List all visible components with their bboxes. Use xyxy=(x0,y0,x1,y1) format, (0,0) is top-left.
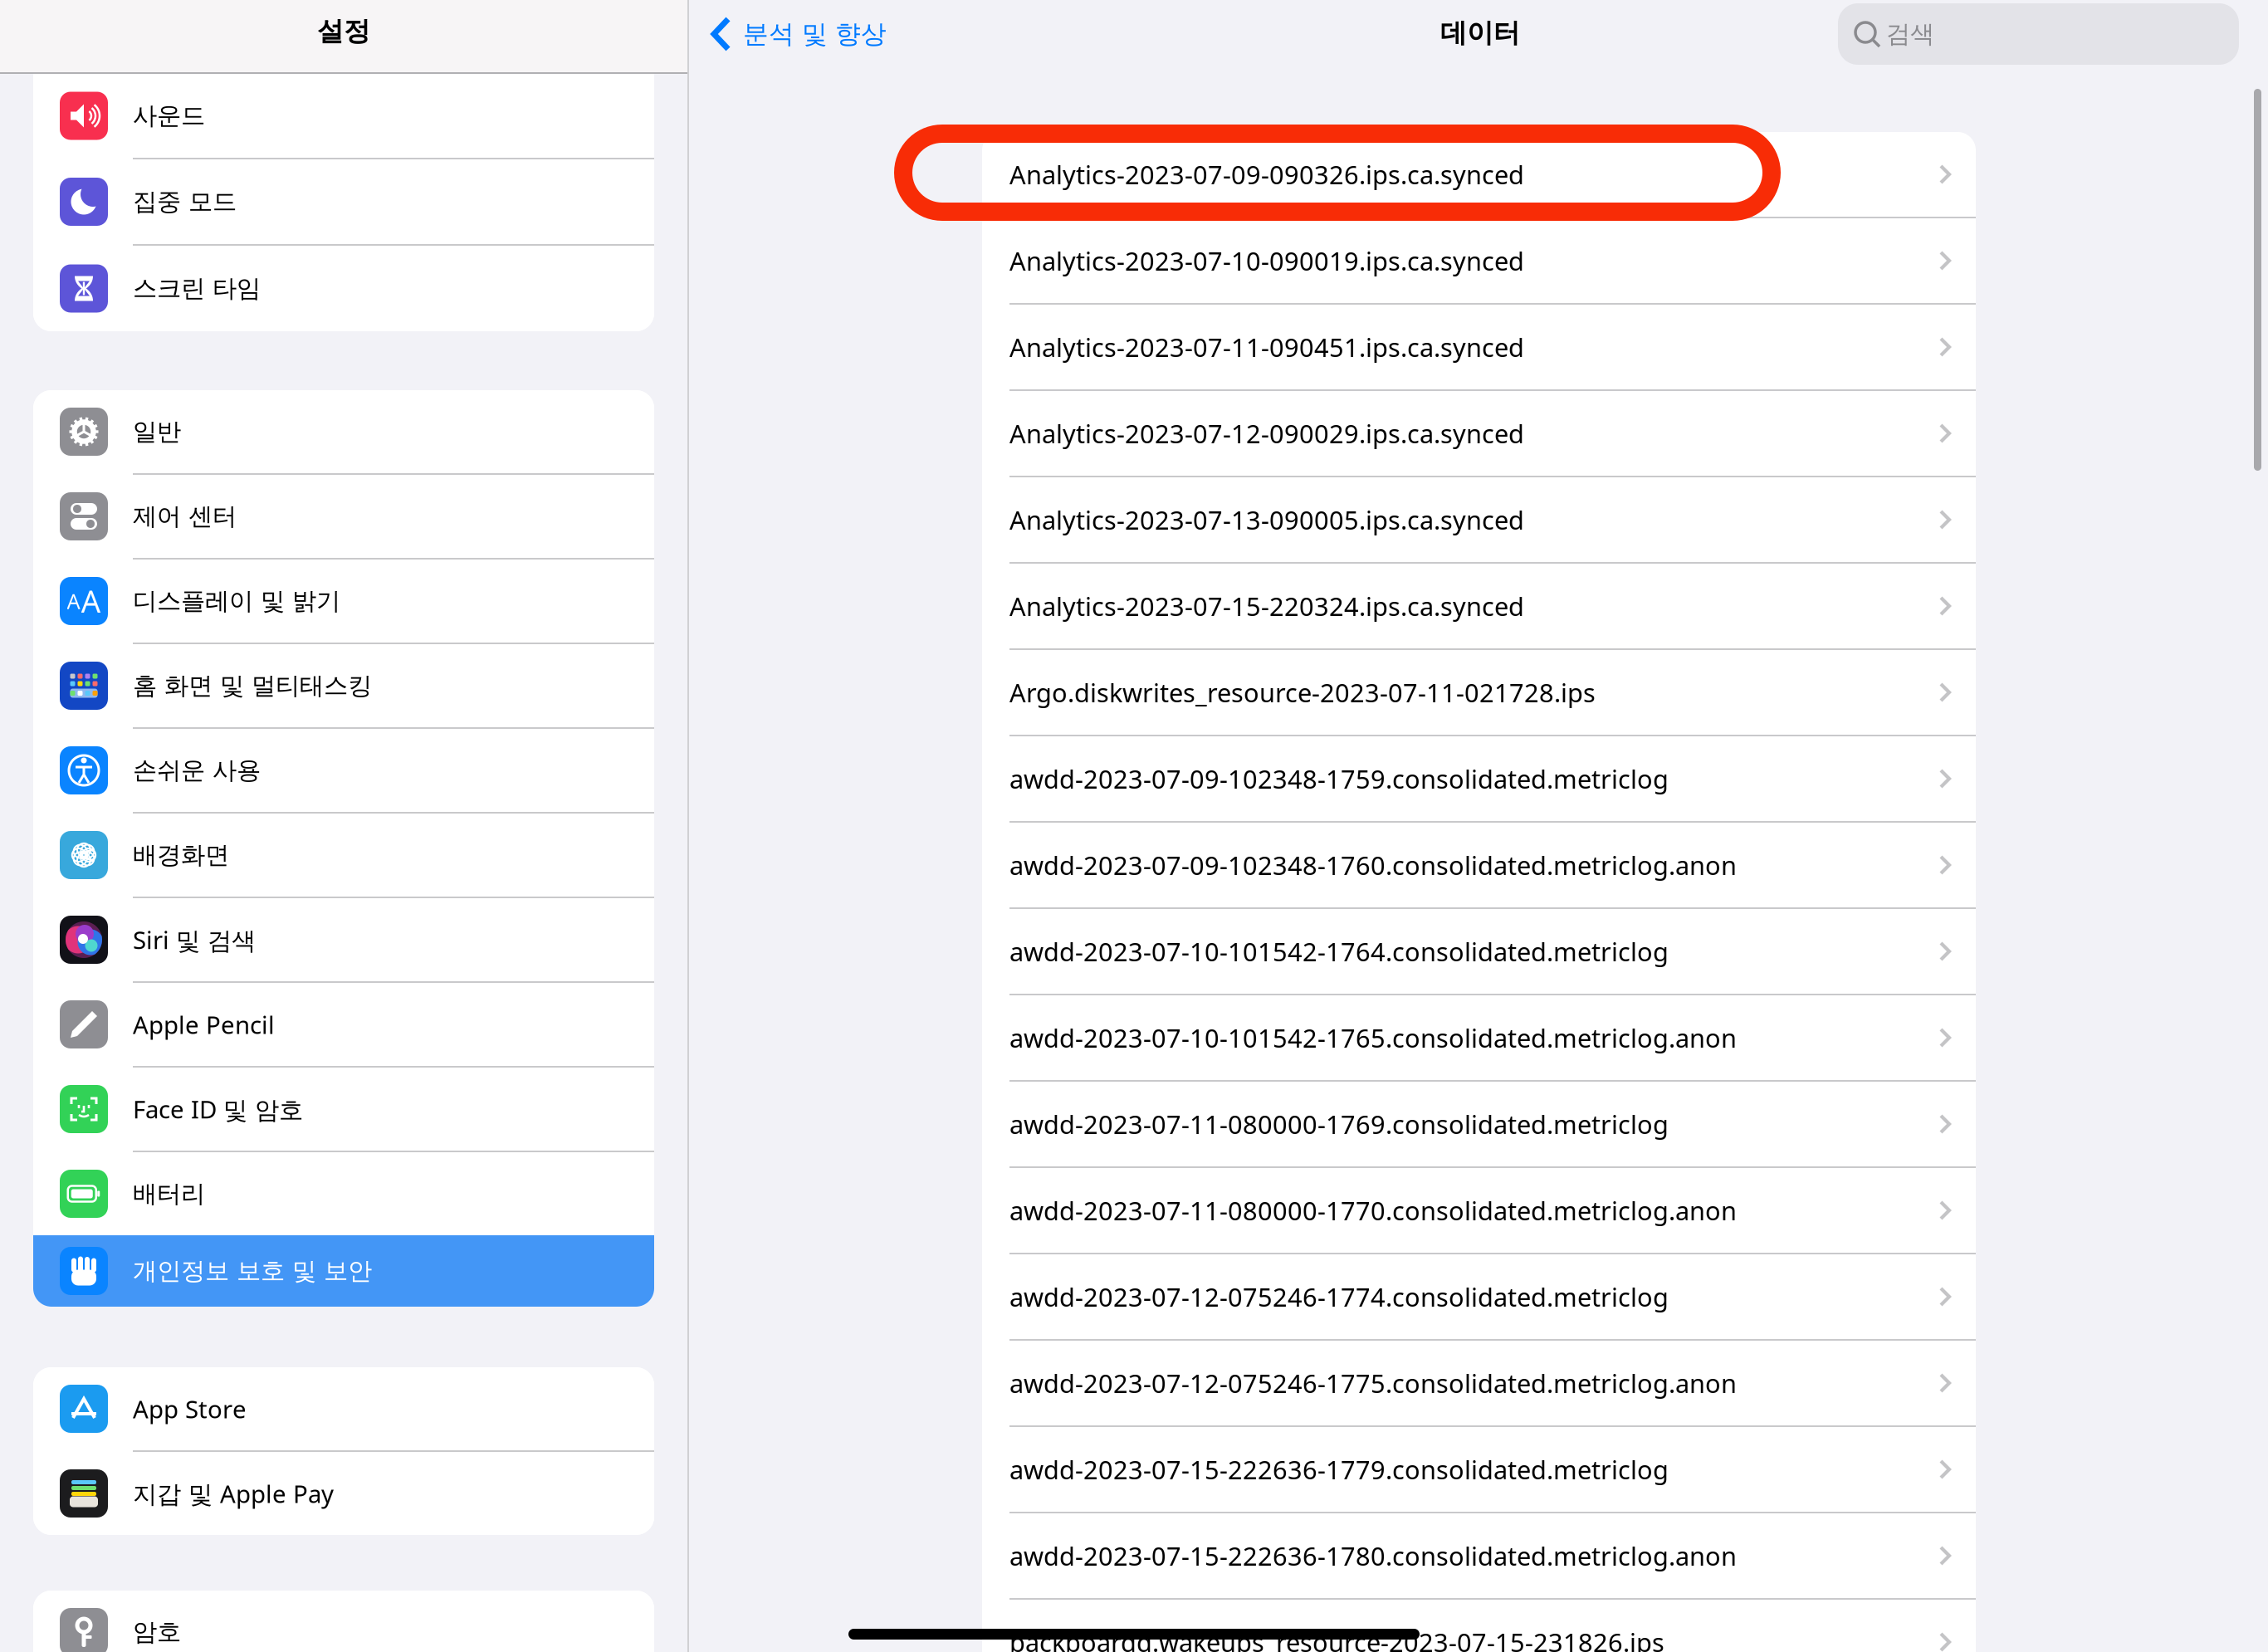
button[interactable]: Siri 및 검색 xyxy=(33,898,654,981)
button[interactable]: awdd-2023-07-10-101542-1764.consolidated… xyxy=(982,909,1976,994)
button[interactable]: App Store xyxy=(33,1367,654,1450)
button[interactable]: 홈 화면 및 멀티태스킹 xyxy=(33,644,654,727)
button[interactable]: 제어 센터 xyxy=(33,475,654,558)
staticText: backboardd.wakeups_resource-2023-07-15-2… xyxy=(1009,1625,1664,1652)
staticText: Argo.diskwrites_resource-2023-07-11-0217… xyxy=(1009,675,1596,709)
staticText: App Store xyxy=(133,1393,247,1425)
staticText: awdd-2023-07-10-101542-1764.consolidated… xyxy=(1009,934,1669,968)
button[interactable]: 지갑 및 Apple Pay xyxy=(33,1452,654,1535)
staticText: 분석 및 향상 xyxy=(743,18,887,50)
button[interactable]: Analytics-2023-07-11-090451.ips.ca.synce… xyxy=(982,305,1976,389)
staticText: 집중 모드 xyxy=(133,187,237,217)
staticText: Analytics-2023-07-09-090326.ips.ca.synce… xyxy=(1009,157,1524,191)
button[interactable]: 암호 xyxy=(33,1591,654,1652)
staticText: Analytics-2023-07-12-090029.ips.ca.synce… xyxy=(1009,416,1524,450)
button[interactable]: Analytics-2023-07-09-090326.ips.ca.synce… xyxy=(982,132,1976,217)
button[interactable]: awdd-2023-07-15-222636-1779.consolidated… xyxy=(982,1427,1976,1512)
staticText: 배터리 xyxy=(133,1179,205,1209)
staticText: A xyxy=(67,587,80,615)
staticText: awdd-2023-07-15-222636-1779.consolidated… xyxy=(1009,1452,1669,1486)
staticText: 사운드 xyxy=(133,101,205,131)
staticText: Analytics-2023-07-15-220324.ips.ca.synce… xyxy=(1009,589,1524,623)
staticText: 검색 xyxy=(1886,19,1934,49)
staticText: 스크린 타임 xyxy=(133,274,261,303)
button[interactable]: awdd-2023-07-11-080000-1770.consolidated… xyxy=(982,1168,1976,1253)
staticText: awdd-2023-07-12-075246-1774.consolidated… xyxy=(1009,1280,1669,1314)
staticText: awdd-2023-07-15-222636-1780.consolidated… xyxy=(1009,1539,1737,1573)
staticText: 개인정보 보호 및 보안 xyxy=(133,1256,372,1286)
button[interactable]: Argo.diskwrites_resource-2023-07-11-0217… xyxy=(982,650,1976,735)
button[interactable]: awdd-2023-07-09-102348-1760.consolidated… xyxy=(982,823,1976,907)
button[interactable]: Analytics-2023-07-13-090005.ips.ca.synce… xyxy=(982,477,1976,562)
button[interactable]: awdd-2023-07-11-080000-1769.consolidated… xyxy=(982,1082,1976,1166)
staticText: awdd-2023-07-09-102348-1760.consolidated… xyxy=(1009,848,1737,882)
button[interactable]: Apple Pencil xyxy=(33,983,654,1066)
button[interactable]: awdd-2023-07-09-102348-1759.consolidated… xyxy=(982,736,1976,821)
button[interactable]: 분석 및 향상 xyxy=(689,15,887,53)
button[interactable]: Face ID 및 암호 xyxy=(33,1068,654,1151)
staticText: 디스플레이 및 밝기 xyxy=(133,586,340,616)
staticText: Analytics-2023-07-13-090005.ips.ca.synce… xyxy=(1009,503,1524,537)
button[interactable]: 손쉬운 사용 xyxy=(33,729,654,812)
staticText: Face ID 및 암호 xyxy=(133,1093,303,1125)
button[interactable]: 배터리 xyxy=(33,1152,654,1235)
staticText: A xyxy=(81,580,101,622)
button[interactable]: Analytics-2023-07-15-220324.ips.ca.synce… xyxy=(982,564,1976,648)
button[interactable]: 검색 xyxy=(1838,3,2239,65)
button[interactable]: 집중 모드 xyxy=(33,159,654,244)
staticText: 손쉬운 사용 xyxy=(133,755,261,785)
button[interactable]: awdd-2023-07-12-075246-1774.consolidated… xyxy=(982,1254,1976,1339)
staticText: 암호 xyxy=(133,1617,181,1647)
button[interactable]: 개인정보 보호 및 보안 xyxy=(33,1235,654,1307)
staticText: 데이터 xyxy=(1440,17,1520,49)
button[interactable]: awdd-2023-07-12-075246-1775.consolidated… xyxy=(982,1341,1976,1425)
button[interactable]: 스크린 타임 xyxy=(33,246,654,331)
button[interactable]: awdd-2023-07-10-101542-1765.consolidated… xyxy=(982,995,1976,1080)
staticText: awdd-2023-07-09-102348-1759.consolidated… xyxy=(1009,762,1669,796)
button[interactable]: Analytics-2023-07-10-090019.ips.ca.synce… xyxy=(982,218,1976,303)
staticText: 제어 센터 xyxy=(133,501,237,531)
staticText: 홈 화면 및 멀티태스킹 xyxy=(133,671,372,701)
staticText: Siri 및 검색 xyxy=(133,923,256,956)
button[interactable]: awdd-2023-07-15-222636-1780.consolidated… xyxy=(982,1513,1976,1598)
button[interactable]: Analytics-2023-07-12-090029.ips.ca.synce… xyxy=(982,391,1976,476)
staticText: 설정 xyxy=(317,15,370,48)
staticText: awdd-2023-07-11-080000-1769.consolidated… xyxy=(1009,1107,1669,1141)
staticText: Analytics-2023-07-10-090019.ips.ca.synce… xyxy=(1009,244,1524,278)
staticText: awdd-2023-07-12-075246-1775.consolidated… xyxy=(1009,1366,1737,1400)
staticText: 일반 xyxy=(133,417,181,447)
staticText: Analytics-2023-07-11-090451.ips.ca.synce… xyxy=(1009,330,1524,364)
button[interactable]: A xyxy=(33,560,654,643)
staticText: 배경화면 xyxy=(133,840,229,870)
staticText: 지갑 및 Apple Pay xyxy=(133,1477,334,1510)
staticText: awdd-2023-07-10-101542-1765.consolidated… xyxy=(1009,1021,1737,1055)
button[interactable]: 일반 xyxy=(33,390,654,473)
button[interactable]: 사운드 xyxy=(33,74,654,158)
button[interactable]: backboardd.wakeups_resource-2023-07-15-2… xyxy=(982,1600,1976,1652)
staticText: Apple Pencil xyxy=(133,1008,275,1041)
staticText: awdd-2023-07-11-080000-1770.consolidated… xyxy=(1009,1193,1737,1227)
button[interactable]: 배경화면 xyxy=(33,814,654,897)
